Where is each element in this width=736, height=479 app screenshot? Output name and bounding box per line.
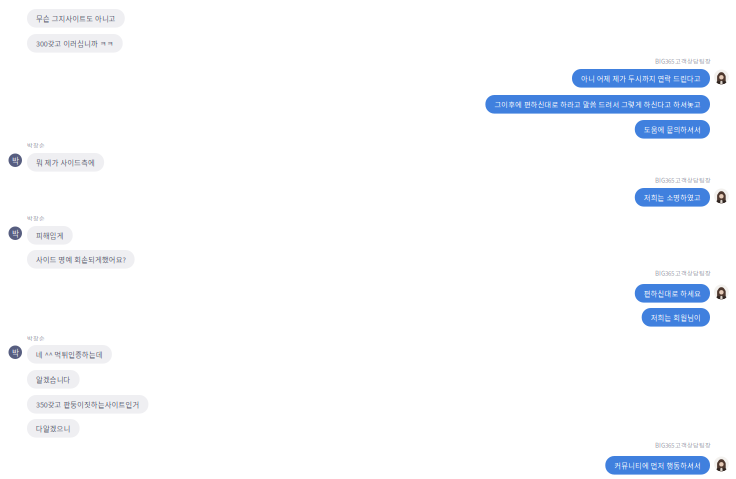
button[interactable]: BIG365 고객상담팀장 프로필 사진 — [714, 284, 729, 299]
staticText: 저희는 소명하였고 — [644, 192, 701, 202]
staticText: 커뮤니티에 먼저 행동하셔서 — [614, 460, 701, 470]
staticText: 박창순 — [27, 334, 45, 343]
staticText: 박 — [12, 227, 19, 239]
staticText: 그이후에 편하신대로 하라고 말씀 드려서 그렇게 하신다고 하셔놓고 — [494, 99, 701, 109]
staticText: 무슨 그지사이트도 아니고 — [36, 13, 116, 23]
button[interactable]: BIG365 고객상담팀장 프로필 사진 — [714, 188, 729, 203]
button[interactable]: 도움에 문의하셔서 — [635, 120, 710, 139]
staticText: 박창순 — [27, 141, 45, 150]
staticText: 도움에 문의하셔서 — [644, 124, 701, 134]
button[interactable]: 알겠습니다 — [27, 370, 80, 389]
staticText: 아니 어제 제가 두시까지 연락 드린다고 — [581, 73, 701, 83]
button[interactable]: 박창순 프로필 사진 — [8, 153, 22, 167]
staticText: 편하신대로 하세요 — [644, 288, 701, 298]
staticText: BIG365 고객상담팀장 — [655, 57, 711, 66]
button[interactable]: 아니 어제 제가 두시까지 연락 드린다고 — [572, 69, 710, 88]
button[interactable]: 뭐 제가 사이드측에 — [27, 153, 104, 172]
staticText: 박 — [12, 154, 19, 166]
staticText: 저희는 회원님이 — [651, 312, 701, 322]
button[interactable]: BIG365 고객상담팀장 프로필 사진 — [714, 69, 729, 84]
button[interactable]: 박창순 프로필 사진 — [8, 226, 22, 240]
button[interactable]: 다알겠으니 — [27, 419, 80, 438]
staticText: 다알겠으니 — [36, 423, 71, 433]
staticText: BIG365 고객상담팀장 — [655, 441, 711, 450]
button[interactable]: 네 ^^ 먹튀인증하는데 — [27, 345, 112, 364]
button[interactable]: 피해입게 — [27, 226, 73, 245]
button[interactable]: 300갖고 이러십니까 ㅋㅋ — [27, 34, 123, 53]
staticText: BIG365 고객상담팀장 — [655, 269, 711, 278]
staticText: 알겠습니다 — [36, 374, 71, 384]
button[interactable]: 커뮤니티에 먼저 행동하셔서 — [605, 456, 710, 475]
staticText: 사이드 명예 회손되게했어요? — [36, 254, 126, 264]
button[interactable]: 저희는 소명하였고 — [635, 188, 710, 207]
staticText: 350갖고 판둥이짓하는사이트인거 — [36, 399, 139, 409]
button[interactable]: 그이후에 편하신대로 하라고 말씀 드려서 그렇게 하신다고 하셔놓고 — [485, 95, 710, 114]
staticText: 뭐 제가 사이드측에 — [36, 157, 95, 167]
button[interactable]: BIG365 고객상담팀장 프로필 사진 — [714, 456, 729, 471]
staticText: 300갖고 이러십니까 ㅋㅋ — [36, 38, 114, 48]
button[interactable]: 사이드 명예 회손되게했어요? — [27, 250, 135, 269]
button[interactable]: 350갖고 판둥이짓하는사이트인거 — [27, 395, 148, 414]
staticText: 네 ^^ 먹튀인증하는데 — [36, 349, 103, 359]
staticText: 피해입게 — [36, 230, 64, 240]
button[interactable]: 박창순 프로필 사진 — [8, 345, 22, 359]
staticText: 박 — [12, 346, 19, 358]
button[interactable]: 무슨 그지사이트도 아니고 — [27, 9, 125, 28]
staticText: BIG365 고객상담팀장 — [655, 176, 711, 185]
staticText: 박창순 — [27, 214, 45, 223]
button[interactable]: 저희는 회원님이 — [642, 308, 710, 327]
button[interactable]: 편하신대로 하세요 — [635, 284, 710, 303]
